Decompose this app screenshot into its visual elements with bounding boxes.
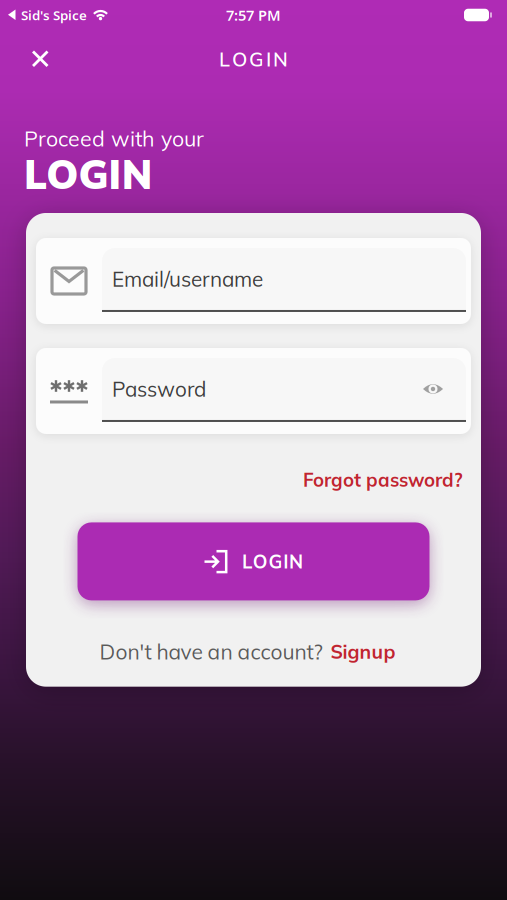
staticText: 7:57 PM [226,5,281,25]
staticText: Sid's Spice [21,6,87,24]
staticText: Password [112,376,206,402]
button[interactable]: Show password [419,379,447,399]
staticText: L O G I N [219,47,288,71]
staticText: Forgot password? [303,468,463,491]
staticText: Don't have an account? [99,638,322,665]
staticText: LOGIN [24,149,153,199]
button[interactable]: LOGIN [77,522,429,600]
staticText: Email/username [112,266,263,292]
staticText: Signup [330,639,395,664]
staticText: LOGIN [242,550,303,573]
button[interactable]: Forgot password? [303,468,463,491]
button[interactable]: Signup [330,639,395,664]
button[interactable]: Close [23,41,58,76]
staticText: Proceed with your [24,125,204,152]
